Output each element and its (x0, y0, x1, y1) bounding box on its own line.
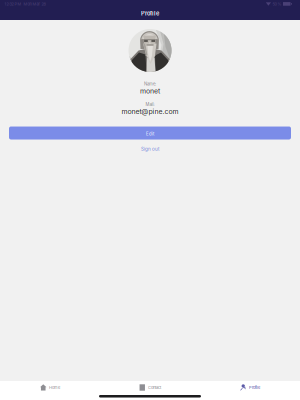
button[interactable]: Contact (100, 381, 200, 394)
staticText: Home (49, 385, 60, 390)
button[interactable]: Home (0, 381, 100, 394)
staticText: Profile (141, 10, 159, 17)
staticText: Sign out (141, 146, 159, 152)
staticText: Profile (249, 385, 260, 390)
staticText: monet@pine.com (121, 107, 178, 116)
staticText: 12:32 PM Mon Mar 28 (4, 2, 45, 6)
staticText: Contact (148, 385, 161, 390)
staticText: Mail: (145, 102, 154, 107)
button[interactable]: Profile (200, 381, 300, 394)
staticText: Name: (144, 81, 156, 87)
button[interactable]: Sign out (141, 146, 159, 152)
staticText: monet (140, 87, 160, 95)
button[interactable]: Edit (9, 126, 291, 139)
staticText: Edit (146, 131, 154, 137)
staticText: 50% (272, 2, 281, 6)
